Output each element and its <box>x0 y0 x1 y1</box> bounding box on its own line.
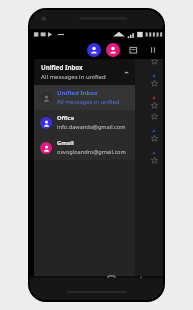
staticText: Unified Inbox <box>41 63 83 71</box>
staticText: Gmail <box>57 139 74 147</box>
button[interactable]: Search <box>127 43 140 56</box>
button[interactable]: Keyboard <box>75 276 89 282</box>
staticText: Jan 30 <box>114 57 129 64</box>
staticText: ccount <box>114 145 131 152</box>
button[interactable]: Gmail <box>34 135 135 160</box>
button[interactable]: Office account <box>87 43 101 57</box>
staticText: n 20... <box>114 108 129 111</box>
button[interactable]: Assistant <box>45 276 59 282</box>
button[interactable]: Home <box>104 276 118 282</box>
staticText: Jan 30 <box>114 45 130 52</box>
staticText: All messages in unified folders <box>41 73 123 81</box>
staticText: Office <box>57 114 75 122</box>
staticText: All messages in unified folders <box>57 98 130 106</box>
button[interactable]: Unified Inbox <box>34 59 135 85</box>
staticText: osvogloandro@gmail.com <box>57 148 126 156</box>
staticText: Jan 21 <box>114 156 129 163</box>
staticText: Jan 28 <box>114 79 129 86</box>
staticText: info.dawanda@gmail.com <box>57 123 126 131</box>
button[interactable]: Back <box>134 276 148 282</box>
staticText: Unified Inbox <box>57 89 98 97</box>
staticText: ips to <box>114 123 128 130</box>
staticText: Jan 23 <box>114 101 129 108</box>
button[interactable]: Office <box>34 110 135 135</box>
button[interactable]: More options <box>146 43 159 56</box>
button[interactable]: Gmail account <box>106 43 120 57</box>
button[interactable]: Unified Inbox <box>34 85 135 110</box>
